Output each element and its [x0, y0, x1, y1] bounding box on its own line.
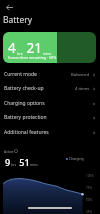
- staticText: hrs: [11, 162, 17, 167]
- staticText: Battery check-up: [4, 85, 44, 92]
- staticText: 4: [8, 39, 16, 57]
- button[interactable]: Charging options: [0, 96, 100, 111]
- button[interactable]: 4: [3, 32, 96, 63]
- staticText: Balanced: [71, 72, 90, 78]
- button[interactable]: Current mode: [0, 67, 100, 82]
- staticText: Battery: [3, 14, 33, 26]
- staticText: 4 items: [75, 86, 90, 92]
- staticText: Screen time remaining · 58%: [8, 55, 57, 60]
- staticText: 50%: [86, 198, 92, 202]
- staticText: Battery protection: [4, 114, 47, 121]
- staticText: mins: [30, 162, 38, 167]
- button[interactable]: Battery check-up: [0, 81, 100, 96]
- staticText: 21: [23, 39, 42, 57]
- staticText: Additional features: [4, 129, 49, 136]
- staticText: hrs: [16, 51, 23, 56]
- staticText: 100%: [86, 174, 94, 178]
- staticText: 75%: [86, 186, 92, 190]
- button[interactable]: Additional features: [0, 125, 100, 140]
- staticText: 9: [5, 156, 11, 168]
- staticText: Charging options: [4, 100, 45, 107]
- button[interactable]: Battery protection: [0, 110, 100, 125]
- staticText: Active: [4, 149, 14, 154]
- staticText: Charging: [69, 156, 84, 161]
- button[interactable]: Back: [3, 1, 15, 13]
- staticText: 51: [17, 156, 30, 168]
- staticText: mins: [42, 51, 52, 56]
- staticText: 25%: [86, 210, 92, 214]
- staticText: Current mode: [4, 71, 37, 78]
